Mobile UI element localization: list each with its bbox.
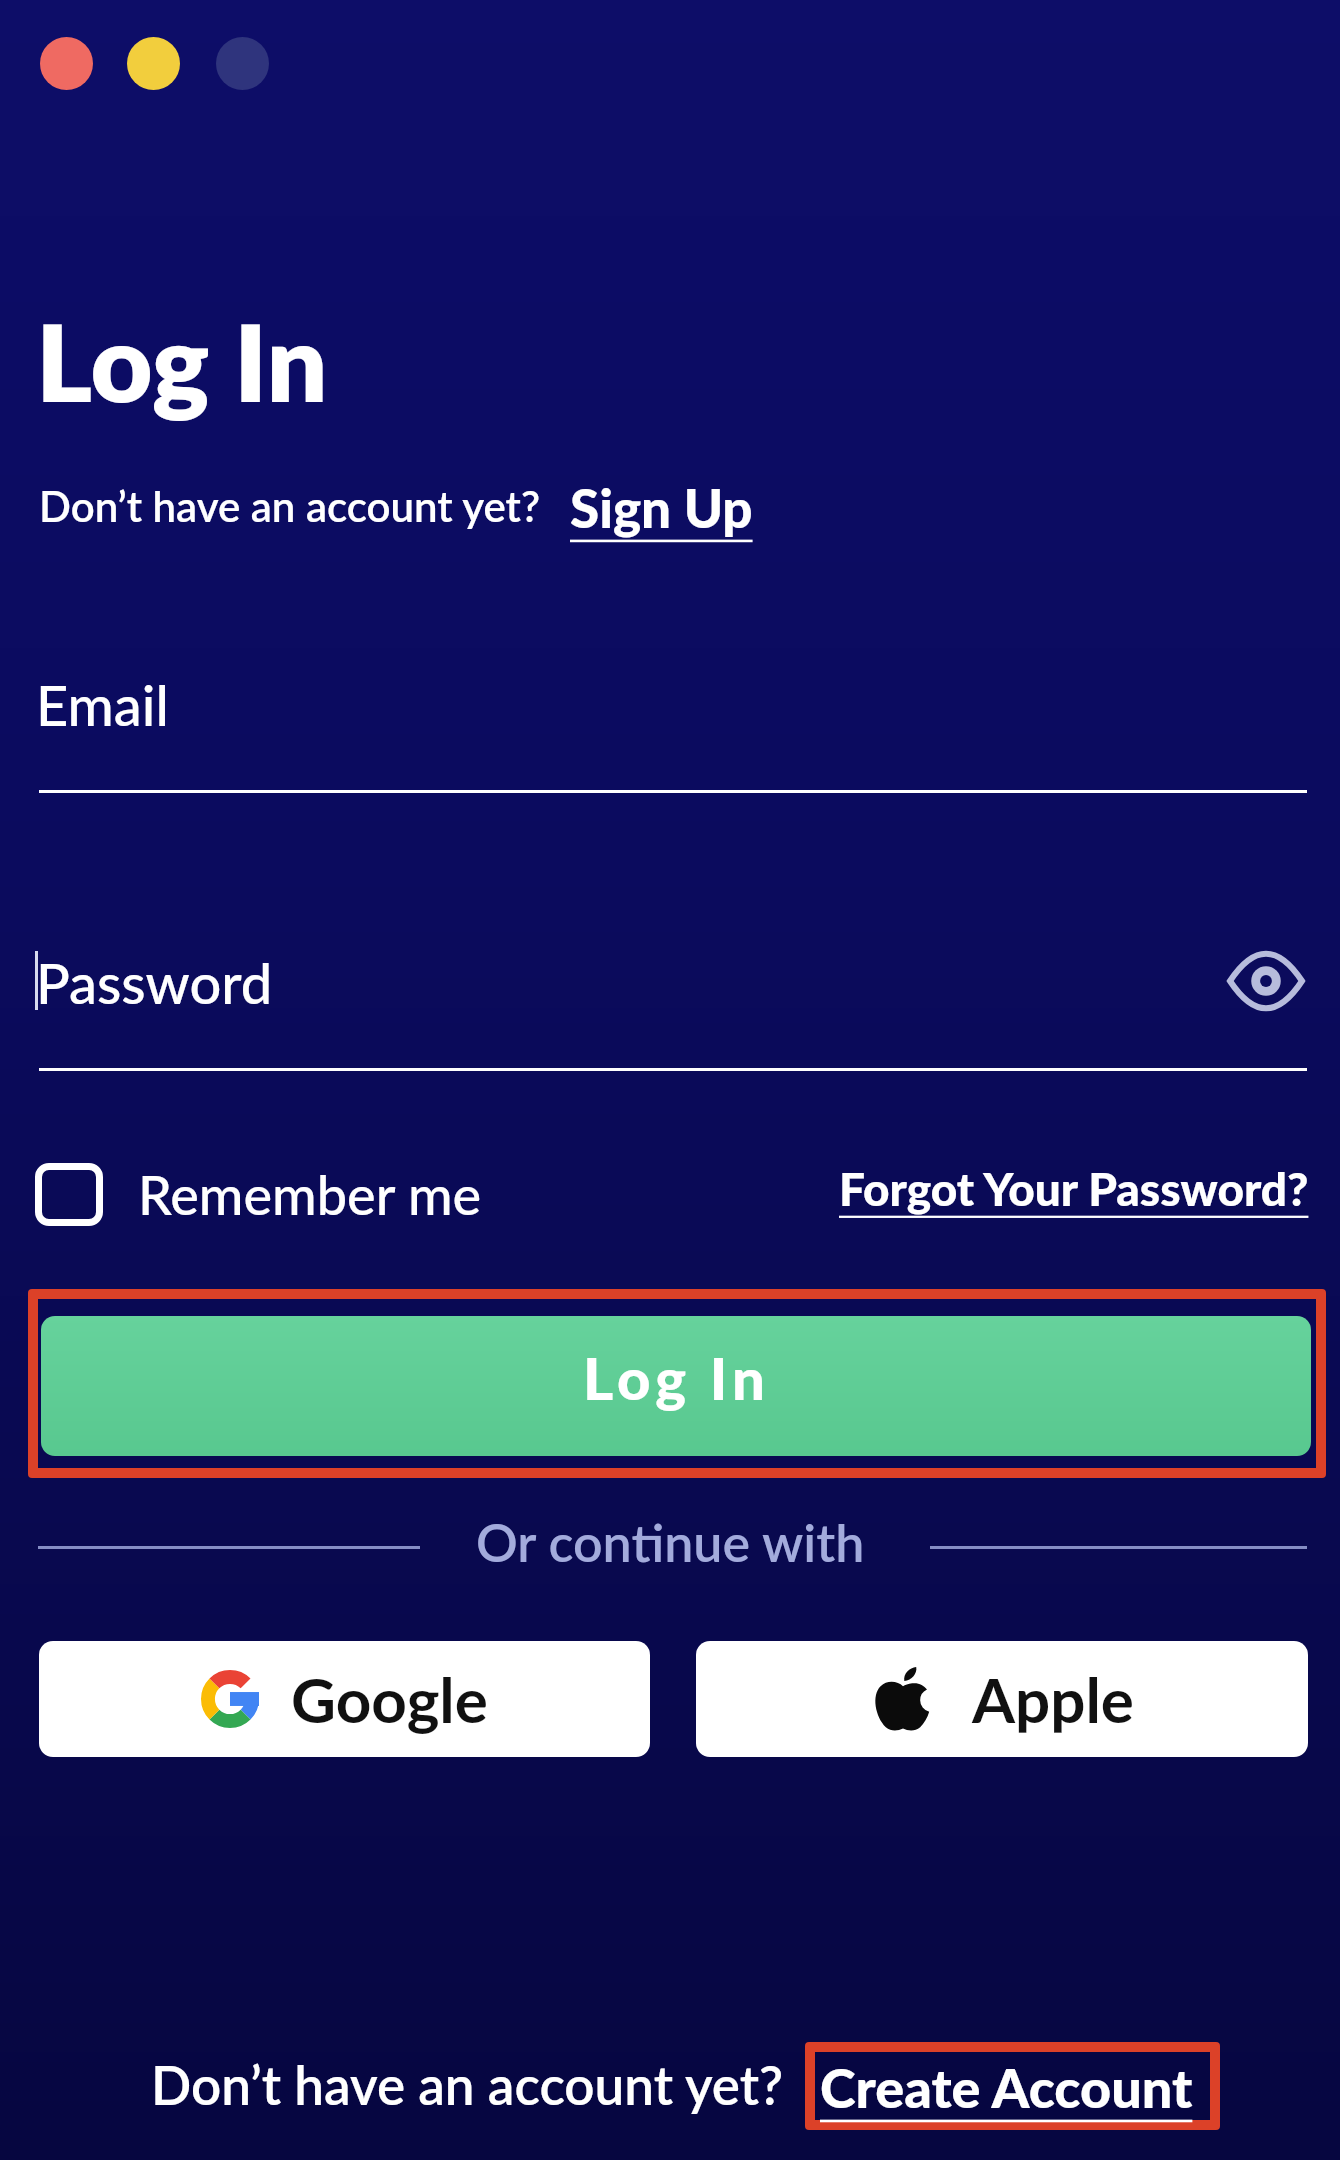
staticText: Log In [583, 1343, 770, 1413]
staticText: Forgot Your Password? [839, 1161, 1309, 1216]
staticText: Remember me [138, 1162, 482, 1227]
staticText: Apple [972, 1662, 1134, 1736]
staticText: Create Account [820, 2055, 1193, 2120]
staticText: Password [36, 949, 273, 1016]
button[interactable]: Apple [696, 1641, 1308, 1757]
staticText: Log In [36, 296, 328, 424]
button[interactable]: Log In [41, 1316, 1311, 1456]
staticText: Sign Up [570, 476, 753, 540]
button[interactable]: Forgot Your Password? [839, 1161, 1309, 1216]
staticText: Google [291, 1662, 488, 1736]
button[interactable] [1230, 946, 1302, 1016]
staticText: Email [36, 671, 169, 738]
button[interactable] [35, 1163, 103, 1226]
staticText: Or continue with [476, 1511, 865, 1573]
button[interactable]: Create Account [820, 2055, 1193, 2120]
staticText: Don’t have an account yet? [39, 481, 540, 531]
staticText: Don’t have an account yet? [151, 2053, 784, 2117]
button[interactable]: Sign Up [570, 476, 753, 540]
button[interactable]: Google [39, 1641, 650, 1757]
